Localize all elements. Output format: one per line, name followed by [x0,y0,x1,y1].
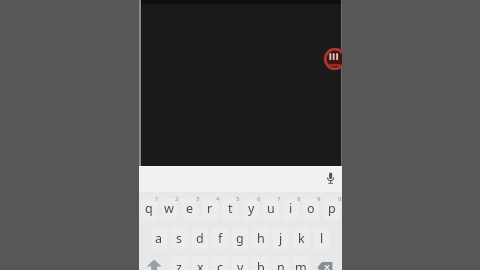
button[interactable]: n [271,253,291,270]
staticText: s [176,230,182,247]
button[interactable]: s [169,224,189,253]
staticText: j [279,230,283,247]
button[interactable]: q [139,194,159,223]
staticText: v [237,259,244,270]
staticText: r [207,200,213,217]
staticText: 9 [317,195,321,202]
staticText: n [277,259,285,270]
staticText: o [307,200,315,217]
button[interactable]: j [271,224,291,253]
staticText: t [228,200,233,217]
staticText: 8 [297,195,301,202]
button[interactable]: u [261,194,281,223]
staticText: l [320,230,324,247]
button[interactable]: c [210,253,230,270]
button[interactable]: p [322,194,342,223]
button[interactable] [324,171,337,187]
staticText: 6 [257,195,261,202]
staticText: q [145,200,153,217]
staticText: m [295,259,307,270]
staticText: e [186,200,194,217]
staticText: i [289,200,293,217]
button[interactable]: x [190,253,210,270]
button[interactable]: z [169,253,189,270]
staticText: g [236,230,244,247]
staticText: k [298,230,305,247]
staticText: b [257,259,265,270]
staticText: z [176,259,182,270]
staticText: p [328,200,336,217]
button[interactable]: f [210,224,230,253]
button[interactable]: r [200,194,220,223]
button[interactable]: y [241,194,261,223]
button[interactable]: b [251,253,271,270]
staticText: 3 [196,195,200,202]
button[interactable]: t [220,194,240,223]
staticText: 5 [236,195,240,202]
button[interactable]: l [312,224,332,253]
button[interactable]: e [180,194,200,223]
staticText: w [164,200,174,217]
staticText: x [197,259,204,270]
button[interactable] [312,253,342,270]
staticText: c [217,259,224,270]
button[interactable]: h [251,224,271,253]
button[interactable]: w [159,194,179,223]
staticText: a [155,230,163,247]
button[interactable]: i [281,194,301,223]
staticText: 2 [175,195,179,202]
button[interactable]: m [291,253,311,270]
staticText: d [196,230,204,247]
staticText: 7 [277,195,281,202]
staticText: 1 [155,195,159,202]
button[interactable]: k [291,224,311,253]
button[interactable]: g [230,224,250,253]
button[interactable]: o [301,194,321,223]
staticText: h [257,230,265,247]
button[interactable]: a [149,224,169,253]
staticText: u [267,200,275,217]
staticText: 0 [338,195,342,202]
button[interactable]: v [230,253,250,270]
staticText: f [218,230,223,247]
staticText: y [248,200,255,217]
button[interactable]: d [190,224,210,253]
button[interactable] [139,253,169,270]
staticText: 4 [216,195,220,202]
